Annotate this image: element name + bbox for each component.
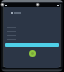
button[interactable] — [4, 33, 60, 37]
button[interactable]: Account — [4, 11, 60, 14]
button[interactable] — [4, 37, 60, 41]
other: Logo — [29, 50, 36, 57]
button[interactable] — [4, 25, 60, 29]
button[interactable] — [5, 43, 59, 47]
button[interactable] — [4, 29, 60, 33]
